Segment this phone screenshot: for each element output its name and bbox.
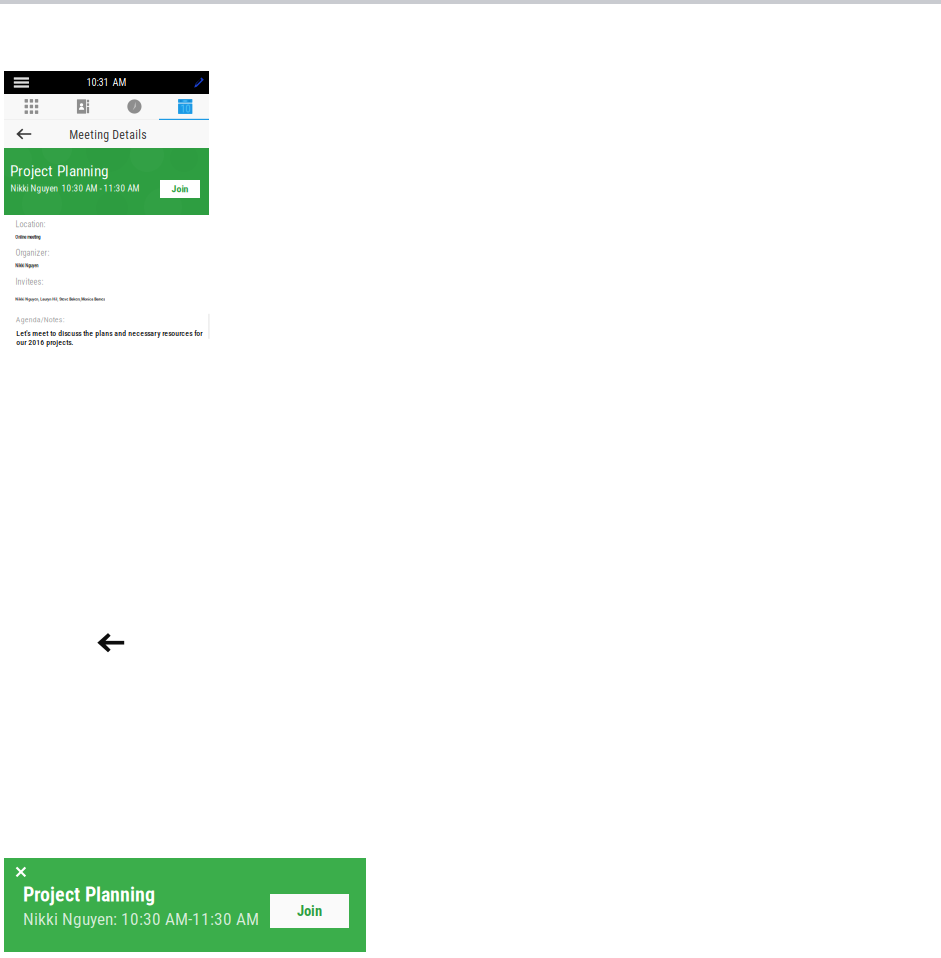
staticText: Join: [297, 902, 322, 920]
button[interactable]: Menu: [6, 71, 36, 94]
staticText: Nikki Nguyen 10:30 AM - 11:30 AM: [10, 183, 139, 194]
button[interactable]: Apps: [6, 93, 57, 119]
staticText: Location:: [15, 219, 45, 229]
button[interactable]: Join: [160, 180, 200, 198]
staticText: Nikki Nguyen, Lauryn Hil, Steve Bakers,M…: [15, 296, 105, 302]
staticText: Join: [171, 183, 188, 195]
button[interactable]: Compose: [187, 71, 211, 94]
button[interactable]: Back: [8, 120, 40, 148]
staticText: Project Planning: [10, 162, 109, 180]
staticText: Let's meet to discuss the plans and nece…: [16, 329, 202, 338]
staticText: Nikki Nguyen: [15, 263, 38, 268]
staticText: Online meeting: [15, 234, 40, 240]
staticText: Project Planning: [23, 883, 155, 906]
button[interactable]: Dismiss: [9, 860, 33, 884]
staticText: Agenda/Notes:: [16, 315, 65, 324]
button[interactable]: Calendar: [160, 93, 211, 119]
staticText: Invitees:: [15, 277, 43, 287]
button[interactable]: Join: [270, 894, 349, 928]
button[interactable]: Contacts: [57, 93, 109, 119]
staticText: Nikki Nguyen: 10:30 AM-11:30 AM: [23, 909, 259, 929]
staticText: Meeting Details: [69, 128, 146, 142]
staticText: Organizer:: [15, 248, 49, 258]
staticText: 10: [180, 102, 190, 115]
button[interactable]: Recents: [109, 93, 160, 119]
staticText: our 2016 projects.: [16, 338, 73, 347]
staticText: 10:31 AM: [86, 76, 126, 89]
